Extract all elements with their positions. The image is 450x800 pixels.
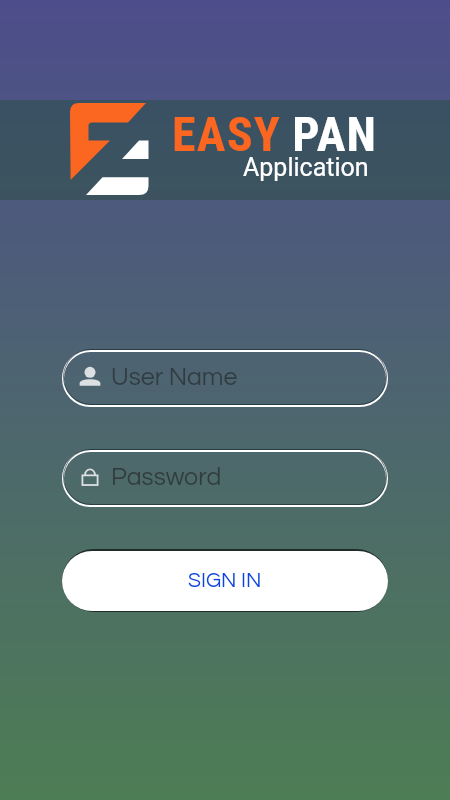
staticText: PAN (282, 106, 378, 162)
button[interactable]: User Name (62, 348, 388, 406)
staticText: User Name (111, 364, 238, 390)
staticText: Application (243, 153, 369, 182)
other: Easy Pan logo (70, 103, 149, 196)
staticText: SIGN IN (188, 570, 262, 592)
staticText: Password (111, 464, 222, 490)
button[interactable]: Password (62, 448, 388, 506)
button[interactable]: SIGN IN (62, 551, 388, 611)
staticText: EASY (172, 106, 282, 162)
